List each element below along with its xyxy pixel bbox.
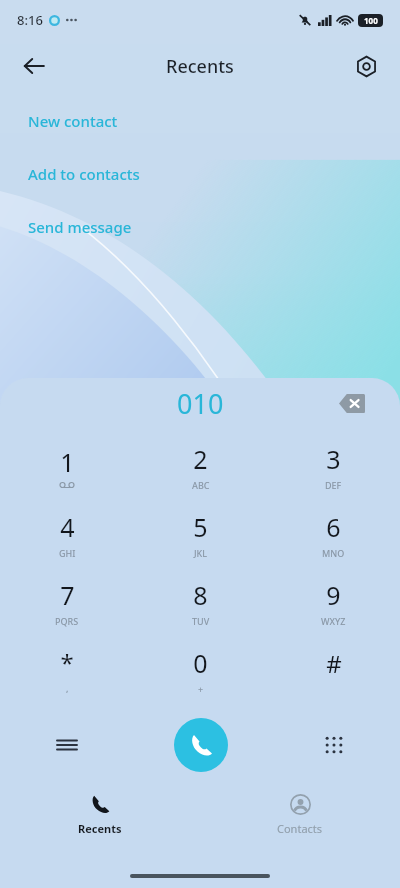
staticText: 2 (193, 442, 208, 476)
staticText: + (198, 683, 204, 695)
staticText: GHI (59, 547, 76, 559)
button[interactable]: 2 (134, 432, 267, 500)
button[interactable]: 4 (0, 500, 134, 568)
staticText: 5 (193, 510, 208, 544)
button[interactable]: 8 (134, 568, 267, 636)
button[interactable]: Add to contacts (0, 163, 400, 185)
staticText: 6 (326, 510, 341, 544)
staticText: New contact (28, 111, 118, 131)
staticText: 3 (326, 442, 341, 476)
staticText: MNO (322, 547, 345, 559)
button[interactable]: 9 (267, 568, 400, 636)
button[interactable]: 0 (134, 636, 267, 704)
button[interactable]: 1 (0, 432, 134, 500)
button[interactable]: Recents (0, 784, 200, 846)
staticText: WXYZ (321, 615, 346, 627)
staticText: Recents (166, 54, 234, 79)
staticText: TUV (192, 615, 210, 627)
button[interactable]: # (267, 636, 400, 704)
button[interactable]: Back (12, 44, 56, 88)
staticText: ABC (192, 479, 210, 491)
staticText: Recents (78, 821, 122, 836)
button[interactable]: 7 (0, 568, 134, 636)
staticText: Add to contacts (28, 164, 140, 184)
button[interactable]: Send message (0, 216, 400, 238)
staticText: DEF (325, 479, 342, 491)
staticText: 4 (60, 510, 75, 544)
button[interactable]: Settings (344, 44, 388, 88)
staticText: 7 (60, 578, 75, 612)
button[interactable]: Backspace (332, 383, 372, 423)
staticText: 8 (193, 578, 208, 612)
staticText: PQRS (55, 615, 79, 627)
staticText: 010 (177, 385, 224, 422)
button[interactable]: Keypad (267, 708, 400, 782)
button[interactable]: 6 (267, 500, 400, 568)
button[interactable]: 3 (267, 432, 400, 500)
staticText: 1 (60, 445, 75, 479)
staticText: 9 (326, 578, 341, 612)
staticText: , (66, 682, 69, 694)
staticText: * (60, 646, 74, 679)
button[interactable]: 5 (134, 500, 267, 568)
staticText: 100 (364, 15, 378, 26)
staticText: JKL (194, 547, 208, 559)
button[interactable]: * (0, 636, 134, 704)
button[interactable]: Contacts (200, 784, 400, 846)
staticText: # (326, 647, 342, 680)
staticText: 0 (193, 646, 208, 680)
staticText: 8:16 (17, 11, 43, 29)
button[interactable]: Call (174, 718, 228, 772)
button[interactable]: Menu (0, 708, 134, 782)
staticText: Send message (28, 217, 132, 237)
button[interactable]: New contact (0, 110, 400, 132)
staticText: Contacts (277, 821, 323, 836)
